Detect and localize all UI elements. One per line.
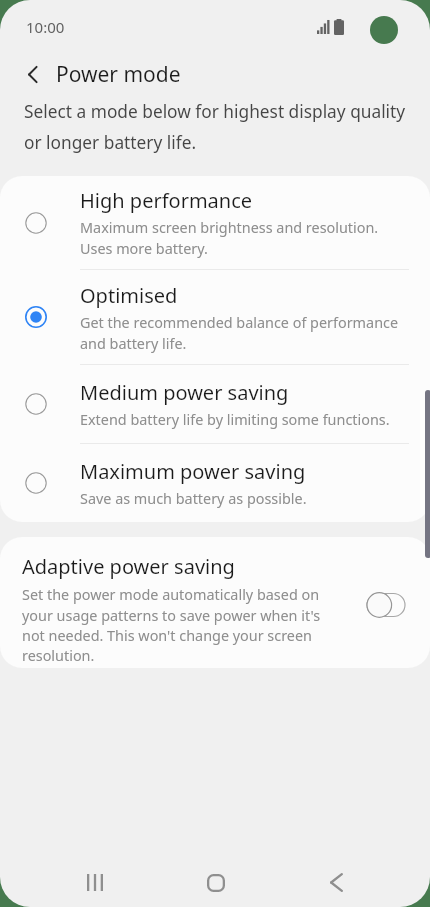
button[interactable]: Navigate up — [15, 56, 51, 92]
staticText: 10:00 — [26, 17, 65, 37]
staticText: Select a mode below for highest display … — [24, 100, 424, 154]
staticText: High performance — [80, 187, 253, 214]
staticText: Maximum screen brightness and resolution… — [80, 218, 379, 258]
staticText: Power mode — [56, 60, 181, 89]
button[interactable]: High performance — [0, 176, 430, 269]
staticText: Get the recommended balance of performan… — [80, 313, 399, 353]
button[interactable]: Maximum power saving — [0, 444, 430, 522]
staticText: Maximum power saving — [80, 458, 306, 485]
button[interactable]: Adaptive power saving, off — [360, 586, 412, 624]
button[interactable]: Adaptive power saving — [0, 537, 430, 668]
staticText: Save as much battery as possible. — [80, 489, 307, 509]
staticText: Medium power saving — [80, 379, 289, 406]
button[interactable]: Recent apps — [59, 858, 131, 907]
staticText: Optimised — [80, 282, 178, 309]
button[interactable]: Back — [300, 858, 372, 907]
button[interactable]: Optimised — [0, 270, 430, 364]
staticText: Adaptive power saving — [22, 553, 235, 580]
staticText: Set the power mode automatically based o… — [22, 585, 332, 665]
staticText: Extend battery life by limiting some fun… — [80, 410, 390, 430]
button[interactable]: Home — [180, 858, 252, 907]
button[interactable]: Medium power saving — [0, 365, 430, 443]
